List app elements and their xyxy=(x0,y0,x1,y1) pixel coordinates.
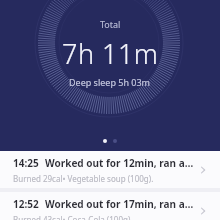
staticText: Worked out for 12min, ran about 58m. xyxy=(45,156,194,170)
button[interactable]: 12:52 xyxy=(0,192,220,220)
staticText: 14:25 xyxy=(13,156,39,170)
other: Open details xyxy=(194,161,212,179)
staticText: Worked out for 17min, ran about 6m. xyxy=(45,197,194,211)
staticText: Deep sleep 5h 03m xyxy=(69,76,151,88)
other: Open details xyxy=(194,202,212,220)
button[interactable]: 14:25 xyxy=(0,151,220,188)
staticText: 7h 11m xyxy=(62,35,159,72)
staticText: Burned 43cal• Coca-Cola (100g). xyxy=(13,214,133,220)
staticText: 12:52 xyxy=(13,197,39,211)
staticText: Burned 29cal• Vegetable soup (100g). xyxy=(13,173,154,184)
staticText: Total xyxy=(100,18,121,30)
